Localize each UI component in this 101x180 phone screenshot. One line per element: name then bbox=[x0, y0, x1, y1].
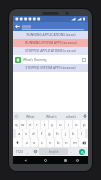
button[interactable]: q bbox=[13, 120, 19, 129]
staticText: RUNNING SYSTEM APPS (xx:xx:xx) bbox=[25, 41, 77, 45]
staticText: RUNNING APPLICATIONS (xx:xx) bbox=[26, 33, 76, 37]
staticText: c bbox=[41, 140, 44, 146]
button[interactable]: what's bbox=[61, 112, 81, 120]
button[interactable]: b bbox=[55, 138, 62, 147]
button[interactable]: Back bbox=[21, 156, 29, 164]
button[interactable]: Voice input bbox=[81, 112, 88, 120]
staticText: h bbox=[56, 131, 59, 137]
button[interactable]: Period bbox=[69, 148, 75, 155]
button[interactable]: i bbox=[65, 120, 72, 129]
button[interactable]: Home bbox=[41, 156, 49, 164]
staticText: e bbox=[29, 122, 32, 128]
button[interactable]: What's Running bbox=[13, 55, 88, 64]
staticText: , bbox=[27, 149, 29, 154]
button[interactable]: w bbox=[20, 120, 26, 129]
button[interactable]: h bbox=[54, 129, 61, 138]
staticText: u bbox=[59, 122, 62, 128]
staticText: i bbox=[68, 122, 70, 128]
staticText: English bbox=[49, 150, 59, 154]
staticText: n bbox=[65, 140, 68, 146]
staticText: l bbox=[81, 131, 83, 137]
button[interactable]: a bbox=[16, 129, 22, 138]
staticText: What bbox=[26, 114, 35, 119]
button[interactable]: u bbox=[57, 120, 64, 129]
button[interactable]: STOPPED APPLICATIONS (x xx:xx) bbox=[13, 47, 88, 55]
staticText: d bbox=[32, 131, 35, 137]
staticText: z bbox=[26, 140, 28, 146]
button[interactable]: Recent apps bbox=[61, 156, 69, 164]
staticText: . bbox=[71, 149, 73, 154]
staticText: p bbox=[83, 122, 86, 128]
button[interactable]: Emoji bbox=[32, 148, 38, 155]
staticText: g bbox=[48, 131, 51, 137]
button[interactable]: y bbox=[49, 120, 56, 129]
staticText: s bbox=[25, 131, 28, 137]
staticText: What's Running bbox=[23, 58, 80, 62]
staticText: STOPPED SYSTEM APPS (xx:xx:xx) bbox=[25, 66, 76, 70]
button[interactable] bbox=[22, 24, 84, 30]
staticText: f bbox=[41, 131, 43, 137]
staticText: v bbox=[49, 140, 52, 146]
staticText: k bbox=[72, 131, 75, 137]
button[interactable]: Shift bbox=[13, 138, 22, 147]
button[interactable]: Space bbox=[39, 148, 68, 155]
button[interactable]: x bbox=[31, 138, 38, 147]
staticText: ?123 bbox=[16, 150, 23, 154]
button[interactable]: Search bbox=[76, 148, 87, 155]
button[interactable]: p bbox=[81, 120, 88, 129]
button[interactable]: Expand bbox=[13, 112, 20, 120]
button[interactable]: n bbox=[63, 138, 70, 147]
button[interactable]: What bbox=[20, 112, 41, 120]
button[interactable]: r bbox=[34, 120, 40, 129]
button[interactable]: d bbox=[30, 129, 37, 138]
button[interactable]: t bbox=[41, 120, 48, 129]
button[interactable]: Screenshot bbox=[73, 156, 81, 164]
staticText: STOPPED APPLICATIONS (x xx:xx) bbox=[25, 49, 76, 53]
button[interactable]: v bbox=[47, 138, 54, 147]
staticText: m bbox=[73, 140, 77, 146]
staticText: j bbox=[65, 131, 67, 137]
button[interactable]: c bbox=[39, 138, 46, 147]
button[interactable]: g bbox=[46, 129, 53, 138]
button[interactable]: ?123 bbox=[14, 148, 24, 155]
staticText: r bbox=[36, 122, 38, 128]
button[interactable]: l bbox=[78, 129, 85, 138]
button[interactable]: Comma bbox=[25, 148, 31, 155]
button[interactable]: RUNNING APPLICATIONS (xx:xx) bbox=[13, 31, 88, 39]
button[interactable]: What's bbox=[41, 112, 61, 120]
button[interactable]: STOPPED SYSTEM APPS (xx:xx:xx) bbox=[13, 64, 88, 72]
staticText: b bbox=[57, 140, 60, 146]
staticText: w bbox=[21, 122, 25, 128]
button[interactable]: e bbox=[27, 120, 33, 129]
staticText: o bbox=[75, 122, 78, 128]
button[interactable]: Options bbox=[80, 56, 87, 63]
button[interactable]: Backspace bbox=[79, 138, 88, 147]
staticText: what's bbox=[66, 114, 77, 119]
button[interactable]: m bbox=[71, 138, 78, 147]
button[interactable]: s bbox=[23, 129, 29, 138]
staticText: What's bbox=[46, 114, 57, 119]
button[interactable]: RUNNING SYSTEM APPS (xx:xx:xx) bbox=[13, 39, 88, 47]
button[interactable]: j bbox=[62, 129, 69, 138]
button[interactable]: o bbox=[73, 120, 80, 129]
staticText: y bbox=[51, 122, 54, 128]
staticText: t bbox=[44, 122, 46, 128]
button[interactable]: k bbox=[70, 129, 77, 138]
button[interactable]: f bbox=[38, 129, 45, 138]
button[interactable]: z bbox=[23, 138, 30, 147]
staticText: a bbox=[18, 131, 21, 137]
staticText: q bbox=[15, 122, 18, 128]
staticText: x bbox=[33, 140, 36, 146]
button[interactable]: Back bbox=[13, 22, 22, 31]
